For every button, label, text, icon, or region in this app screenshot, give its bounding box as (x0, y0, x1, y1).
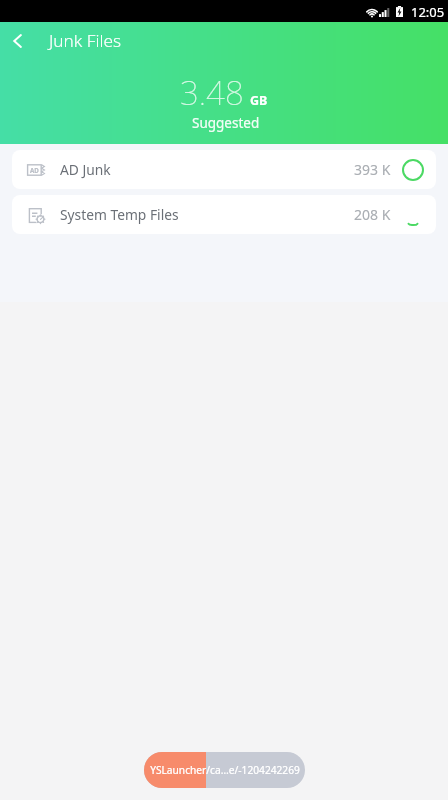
staticText: 208 K (354, 205, 391, 224)
button[interactable]: Select AD Junk (401, 158, 425, 182)
staticText: Junk Files (49, 29, 121, 52)
staticText: 3.48 (180, 70, 244, 115)
button[interactable]: System Temp Files (12, 195, 436, 234)
staticText: 393 K (354, 160, 391, 179)
staticText: AD (30, 166, 39, 174)
staticText: AD Junk (60, 160, 111, 179)
staticText: GB (250, 92, 268, 109)
button[interactable]: AD (12, 150, 436, 189)
staticText: System Temp Files (60, 205, 179, 224)
button[interactable]: Select System Temp Files (401, 203, 425, 227)
staticText: YSLauncher/ca…e/-1204242269 (150, 763, 300, 777)
button[interactable]: YSLauncher/ca…e/-1204242269 (144, 752, 305, 788)
button[interactable]: Back (0, 22, 36, 62)
staticText: Suggested (192, 114, 260, 132)
staticText: 12:05 (411, 3, 445, 21)
